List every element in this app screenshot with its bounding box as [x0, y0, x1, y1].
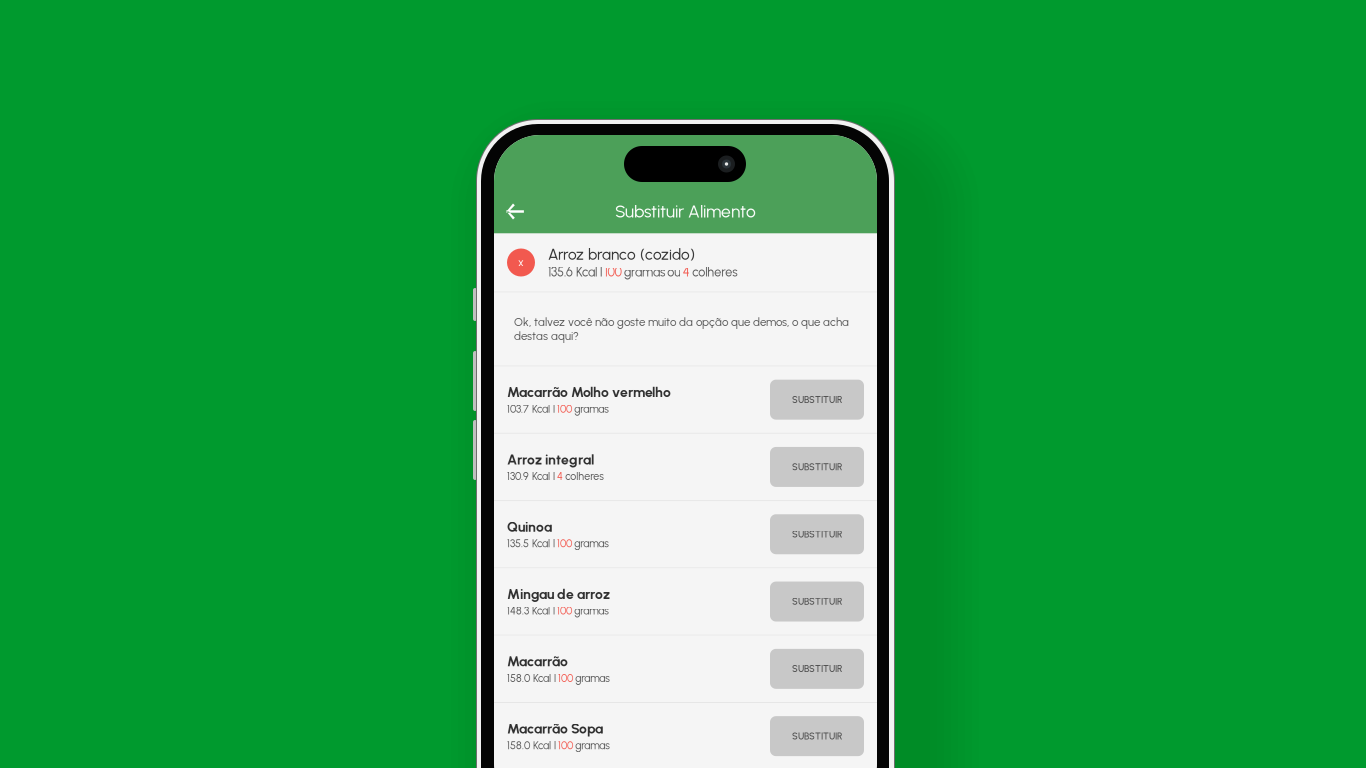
staticText: x — [518, 256, 524, 269]
staticText: SUBSTITUIR — [792, 529, 842, 540]
staticText: gramas — [574, 604, 609, 617]
staticText: Arroz branco (cozido) — [548, 245, 695, 264]
staticText: Quinoa — [507, 518, 552, 535]
button[interactable]: SUBSTITUIR — [770, 582, 864, 622]
staticText: 100 — [558, 739, 573, 752]
button[interactable]: Mingau de arroz — [494, 568, 877, 635]
staticText: 100 — [557, 537, 572, 550]
button[interactable]: SUBSTITUIR — [770, 716, 864, 756]
staticText: colheres — [692, 265, 737, 280]
staticText: 130.9 Kcal l — [507, 470, 555, 483]
button[interactable]: Back — [494, 192, 536, 230]
staticText: Macarrão — [507, 653, 568, 670]
staticText: 100 — [558, 672, 573, 685]
staticText: gramas — [624, 265, 665, 280]
staticText: SUBSTITUIR — [792, 394, 842, 405]
staticText: Arroz integral — [507, 451, 594, 468]
staticText: gramas — [574, 403, 609, 415]
button[interactable]: SUBSTITUIR — [770, 380, 864, 420]
button[interactable]: Quinoa — [494, 501, 877, 567]
staticText: SUBSTITUIR — [792, 731, 842, 742]
staticText: 100 — [557, 604, 572, 617]
staticText: 4 — [683, 265, 690, 280]
staticText: gramas — [575, 739, 610, 752]
button[interactable]: Macarrão — [494, 636, 877, 702]
staticText: 135.6 Kcal l — [548, 265, 602, 280]
staticText: Ok, talvez você não goste muito da opção… — [514, 315, 849, 329]
staticText: colheres — [565, 470, 604, 483]
staticText: gramas — [574, 537, 609, 550]
staticText: SUBSTITUIR — [792, 461, 842, 473]
staticText: 103.7 Kcal l — [507, 403, 555, 415]
button[interactable]: Macarrão Molho vermelho — [494, 366, 877, 433]
staticText: Substituir Alimento — [615, 201, 756, 222]
staticText: SUBSTITUIR — [792, 663, 842, 674]
staticText: destas aqui? — [514, 329, 579, 343]
staticText: 135.5 Kcal l — [507, 537, 555, 550]
staticText: 158.0 Kcal l — [507, 739, 556, 752]
staticText: 100 — [557, 403, 572, 415]
staticText: 4 — [557, 470, 563, 483]
staticText: Macarrão Sopa — [507, 720, 603, 737]
staticText: 158.0 Kcal l — [507, 672, 556, 685]
button[interactable]: SUBSTITUIR — [770, 447, 864, 487]
button[interactable]: Macarrão Sopa — [494, 703, 877, 768]
staticText: SUBSTITUIR — [792, 596, 842, 607]
staticText: Mingau de arroz — [507, 586, 610, 602]
staticText: Macarrão Molho vermelho — [507, 384, 671, 400]
button[interactable]: Arroz integral — [494, 434, 877, 500]
staticText: gramas — [575, 672, 610, 685]
button[interactable]: SUBSTITUIR — [770, 514, 864, 554]
staticText: 148.3 Kcal l — [507, 604, 555, 617]
button[interactable]: SUBSTITUIR — [770, 649, 864, 689]
staticText: ou — [667, 265, 680, 280]
staticText: 100 — [604, 265, 621, 280]
